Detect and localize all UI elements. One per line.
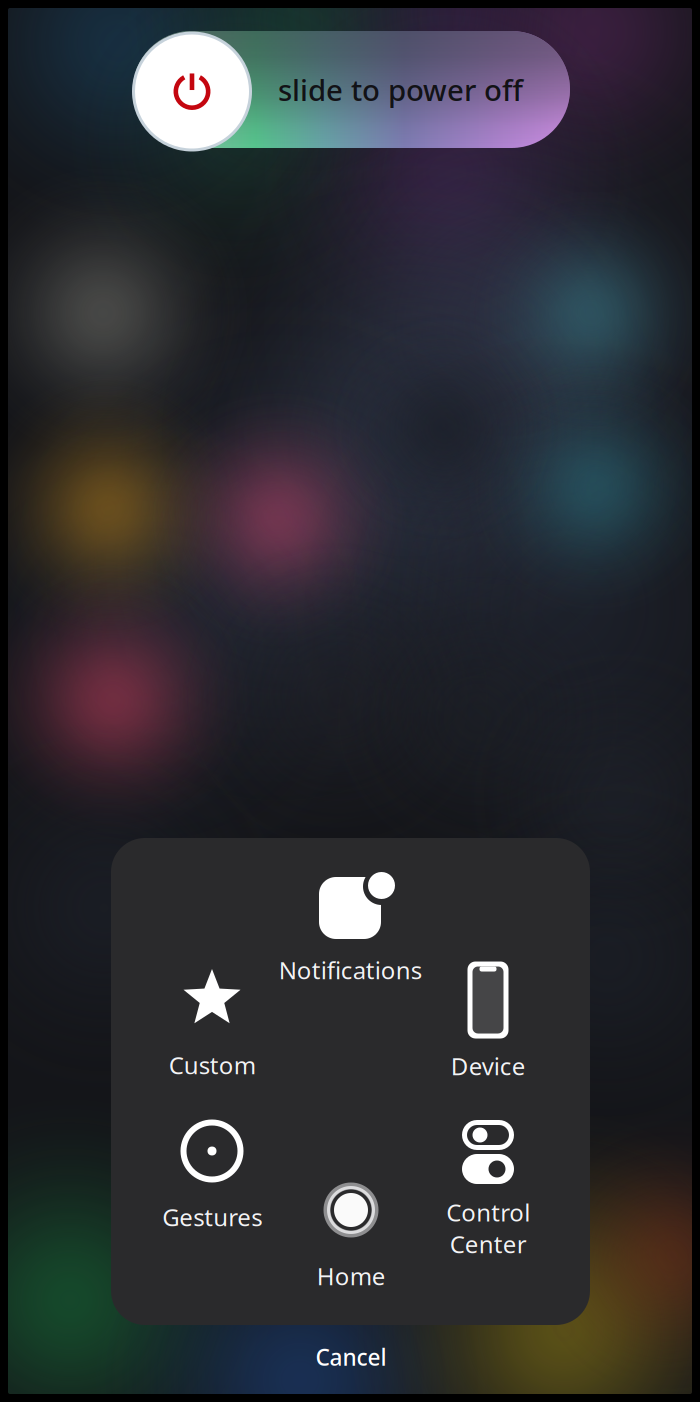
button[interactable]: Home — [246, 1135, 456, 1285]
button[interactable]: Device — [383, 925, 593, 1075]
button[interactable]: Power off — [132, 31, 252, 151]
staticText: Control Center — [446, 1196, 530, 1260]
button[interactable]: Control Center — [383, 1077, 593, 1227]
staticText: Gestures — [162, 1201, 262, 1233]
button[interactable]: Gestures — [107, 1076, 317, 1226]
staticText: Cancel — [315, 1342, 386, 1372]
button[interactable]: Custom — [107, 924, 317, 1074]
staticText: Device — [450, 1050, 525, 1082]
button[interactable]: Notifications — [245, 829, 455, 979]
staticText: Custom — [168, 1049, 255, 1081]
staticText: Home — [316, 1260, 385, 1292]
staticText: Notifications — [278, 954, 421, 986]
button[interactable]: Cancel — [221, 1329, 481, 1385]
staticText: slide to power off — [278, 70, 523, 109]
